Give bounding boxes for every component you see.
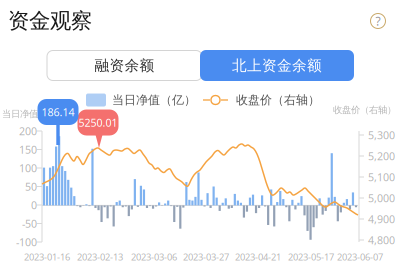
staticText: 4,900 (368, 212, 395, 226)
staticText: ? (375, 13, 380, 29)
staticText: 0 (31, 198, 37, 212)
staticText: 2023-03-27 (183, 251, 229, 263)
staticText: 2023-02-13 (77, 251, 123, 263)
staticText: 5,000 (368, 191, 395, 205)
staticText: 5,200 (368, 149, 395, 163)
staticText: 资金观察 (8, 8, 92, 34)
staticText: 2023-01-16 (24, 251, 70, 263)
staticText: 北上资金余额 (232, 56, 322, 74)
staticText: 50 (25, 179, 37, 194)
staticText: 收盘价（右轴） (333, 104, 396, 116)
staticText: 200 (19, 124, 37, 138)
staticText: 100 (19, 161, 37, 175)
staticText: 5,100 (368, 170, 395, 184)
staticText: 当日净值（亿） (112, 93, 196, 107)
button[interactable]: 北上资金余额 (200, 50, 354, 81)
staticText: 当日净值（亿） (2, 108, 65, 120)
staticText: -100 (16, 235, 37, 249)
button[interactable]: ? (367, 10, 389, 32)
staticText: 5,300 (368, 128, 395, 142)
staticText: 2023-04-21 (235, 251, 281, 263)
staticText: 融资余额 (94, 56, 154, 74)
staticText: 收盘价（右轴） (236, 93, 320, 107)
staticText: 4,800 (368, 233, 395, 247)
staticText: 5250.01 (78, 115, 117, 130)
staticText: 2023-03-06 (131, 251, 177, 263)
staticText: 150 (19, 142, 37, 157)
staticText: -50 (22, 216, 37, 231)
staticText: 186.14 (41, 105, 74, 119)
staticText: 2023-05-17 (288, 251, 334, 263)
staticText: 2023-06-07 (337, 251, 383, 263)
button[interactable]: 融资余额 (47, 50, 202, 80)
